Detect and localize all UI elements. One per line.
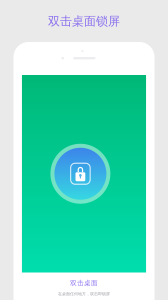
staticText: 双击桌面 xyxy=(70,279,98,287)
staticText: 双击桌面锁屏 xyxy=(48,14,120,29)
button[interactable]: Lock screen xyxy=(50,144,110,204)
staticText: 在桌面任何地方，双击即锁屏 xyxy=(58,291,110,296)
